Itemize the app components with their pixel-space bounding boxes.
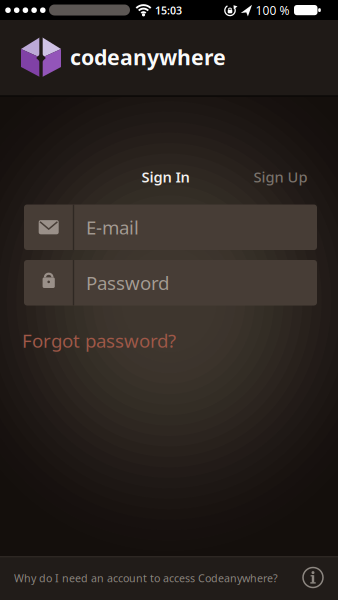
staticText: Why do I need an account to access Codea… [14, 571, 278, 585]
button[interactable]: Sign Up [243, 159, 317, 194]
button[interactable]: Why do I need an account to access Codea… [0, 556, 338, 600]
staticText: 15:03 [155, 3, 182, 17]
button[interactable]: E-mail [24, 204, 317, 250]
staticText: Sign In [141, 167, 189, 186]
button[interactable]: Password [24, 260, 317, 305]
staticText: codeanywhere [70, 43, 226, 71]
button[interactable]: Forgot password? [22, 322, 192, 359]
staticText: 100 % [255, 2, 289, 18]
staticText: Forgot password? [22, 328, 176, 353]
staticText: Sign Up [253, 167, 307, 186]
staticText: Password [86, 270, 169, 295]
staticText: E-mail [86, 215, 139, 240]
button[interactable]: Sign In [131, 159, 199, 194]
